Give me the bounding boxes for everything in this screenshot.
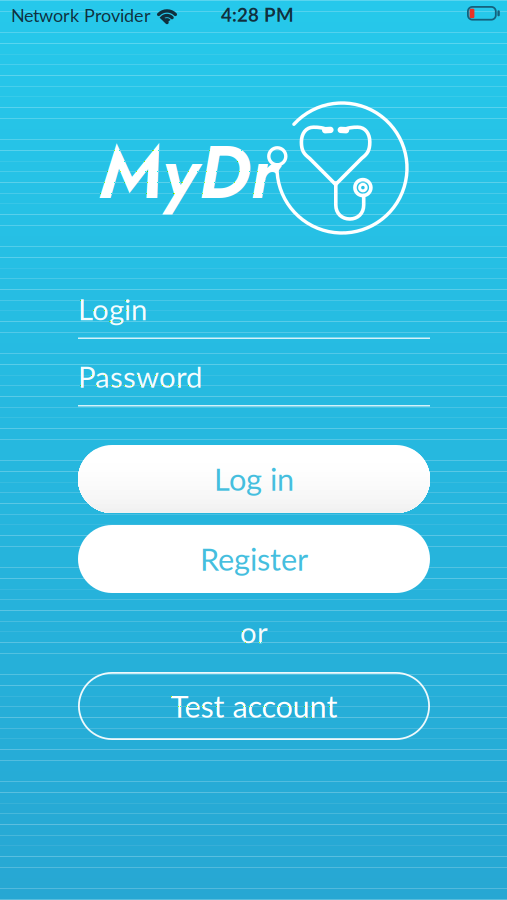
staticText: or	[240, 614, 268, 650]
staticText: Register	[200, 541, 308, 577]
staticText: 4:28 PM	[221, 3, 294, 26]
staticText: Log in	[214, 461, 294, 497]
staticText: Password	[78, 359, 202, 394]
staticText: Network Provider	[11, 4, 151, 26]
staticText: Test account	[170, 688, 337, 724]
staticText: MyDr	[99, 118, 278, 226]
staticText: Login	[78, 291, 147, 327]
button[interactable]: Test account	[78, 672, 430, 740]
button[interactable]: Log in	[78, 445, 430, 513]
button[interactable]: Register	[78, 525, 430, 593]
